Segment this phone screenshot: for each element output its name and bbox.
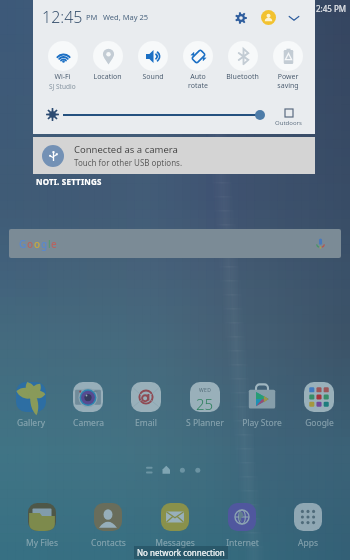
button[interactable]: Gallery xyxy=(3,378,59,429)
staticText: e xyxy=(51,237,57,251)
staticText: WED xyxy=(199,387,212,394)
staticText: l xyxy=(48,237,51,251)
button[interactable]: Power saving xyxy=(265,41,310,90)
staticText: Play Store xyxy=(242,417,282,429)
button[interactable]: User profile xyxy=(259,8,278,27)
staticText: 25 xyxy=(196,394,214,412)
button[interactable]: Email xyxy=(118,378,174,429)
button[interactable]: G xyxy=(9,229,341,258)
staticText: Messages xyxy=(155,537,195,549)
button[interactable]: Apps xyxy=(280,499,336,549)
staticText: Bluetooth xyxy=(226,72,259,82)
staticText: NOTI. SETTINGS xyxy=(36,176,102,187)
staticText: Sound xyxy=(142,72,164,82)
staticText: No network connection xyxy=(137,547,225,558)
button[interactable]: Connected as a camera xyxy=(42,137,307,174)
staticText: Location xyxy=(93,72,122,82)
staticText: PM xyxy=(86,12,98,22)
staticText: g xyxy=(41,237,48,251)
staticText: Internet xyxy=(226,537,259,549)
staticText: 2:45 PM xyxy=(316,3,347,14)
staticText: Auto rotate xyxy=(188,72,208,90)
button[interactable]: Bluetooth xyxy=(220,41,265,82)
button[interactable]: Sound xyxy=(130,41,175,82)
button[interactable]: Settings xyxy=(231,8,250,27)
staticText: Google xyxy=(305,417,334,429)
button[interactable]: Contacts xyxy=(80,499,136,549)
button[interactable]: WED xyxy=(177,378,233,429)
staticText: S Planner xyxy=(186,417,224,429)
staticText: Touch for other USB options. xyxy=(74,157,183,168)
staticText: 12:45 xyxy=(42,6,83,28)
button[interactable]: Wi-Fi xyxy=(40,41,85,91)
staticText: Wed, May 25 xyxy=(103,12,148,22)
button[interactable]: Location xyxy=(85,41,130,82)
staticText: Email xyxy=(135,417,157,429)
staticText: Wi-Fi xyxy=(54,72,71,82)
button[interactable]: Outdoors xyxy=(270,109,307,127)
staticText: Contacts xyxy=(91,537,126,549)
button[interactable]: Auto rotate xyxy=(175,41,220,90)
staticText: My Files xyxy=(26,537,58,549)
staticText: o xyxy=(34,237,41,251)
button[interactable]: Google xyxy=(291,378,347,429)
staticText: o xyxy=(27,237,34,251)
staticText: Power saving xyxy=(277,72,299,90)
staticText: Camera xyxy=(73,417,104,429)
staticText: Gallery xyxy=(17,417,45,429)
button[interactable]: Expand quick settings xyxy=(284,8,303,27)
staticText: G xyxy=(19,237,27,251)
staticText: Apps xyxy=(298,537,318,549)
button[interactable]: Messages xyxy=(147,499,203,549)
button[interactable]: NOTI. SETTINGS xyxy=(36,176,102,187)
staticText: Connected as a camera xyxy=(74,143,178,156)
button[interactable]: My Files xyxy=(14,499,70,549)
button[interactable]: Internet xyxy=(214,499,270,549)
button[interactable]: Brightness xyxy=(63,108,266,122)
button[interactable]: Camera xyxy=(60,378,116,429)
staticText: SJ Studio xyxy=(49,82,76,91)
button[interactable]: Play Store xyxy=(234,378,290,429)
staticText: Outdoors xyxy=(275,119,302,127)
